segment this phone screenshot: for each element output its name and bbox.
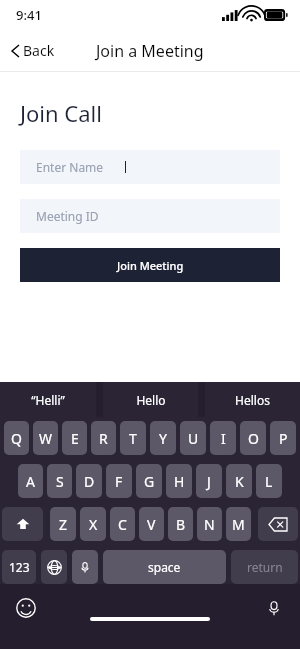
button[interactable]: K	[226, 464, 252, 498]
button[interactable]: Change keyboard	[41, 550, 67, 584]
staticText: J	[207, 472, 211, 491]
staticText: Join Meeting	[117, 258, 184, 273]
staticText: Back	[23, 41, 55, 60]
button[interactable]: Back	[0, 35, 65, 66]
staticText: R	[99, 429, 108, 448]
button[interactable]: Enter Name	[20, 150, 280, 184]
staticText: Join a Meeting	[96, 40, 204, 62]
button[interactable]: V	[139, 507, 164, 541]
button[interactable]: Meeting ID	[20, 199, 280, 233]
staticText: P	[279, 429, 288, 448]
button[interactable]: Emoji	[14, 596, 38, 620]
button[interactable]: A	[18, 464, 43, 498]
button[interactable]: Y	[150, 421, 176, 455]
button[interactable]: C	[110, 507, 135, 541]
staticText: B	[176, 515, 186, 534]
staticText: Y	[159, 429, 167, 448]
staticText: E	[71, 429, 79, 448]
button[interactable]: U	[180, 421, 206, 455]
staticText: O	[248, 429, 259, 448]
staticText: L	[265, 472, 273, 491]
button[interactable]: Join Meeting	[20, 248, 280, 282]
button[interactable]: Shift	[2, 507, 43, 541]
button[interactable]: Backspace	[258, 507, 298, 541]
button[interactable]: D	[76, 464, 102, 498]
button[interactable]: I	[210, 421, 236, 455]
staticText: H	[174, 472, 185, 491]
staticText: A	[26, 472, 35, 491]
button[interactable]: Z	[50, 507, 76, 541]
staticText: K	[235, 472, 244, 491]
button[interactable]: T	[120, 421, 146, 455]
staticText: “Helli”	[31, 392, 65, 408]
button[interactable]: S	[47, 464, 72, 498]
button[interactable]: G	[136, 464, 162, 498]
staticText: Hello	[136, 392, 166, 408]
staticText: 9:41	[16, 6, 42, 24]
staticText: U	[188, 429, 199, 448]
button[interactable]: Dictate	[72, 550, 98, 584]
staticText: F	[115, 472, 123, 491]
button[interactable]: Hello	[103, 382, 198, 417]
button[interactable]: return	[231, 550, 298, 584]
button[interactable]: J	[196, 464, 222, 498]
staticText: X	[89, 515, 98, 534]
staticText: D	[84, 472, 95, 491]
button[interactable]: F	[106, 464, 132, 498]
staticText: Meeting ID	[36, 208, 99, 224]
staticText: N	[204, 515, 215, 534]
staticText: G	[144, 472, 155, 491]
button[interactable]: 123	[2, 550, 36, 584]
staticText: C	[118, 515, 127, 534]
button[interactable]: O	[240, 421, 266, 455]
button[interactable]: Q	[4, 421, 29, 455]
staticText: Join Call	[20, 98, 102, 128]
staticText: 123	[9, 559, 30, 575]
button[interactable]: P	[270, 421, 296, 455]
staticText: M	[232, 515, 245, 534]
staticText: return	[247, 559, 283, 575]
staticText: V	[147, 515, 156, 534]
button[interactable]: X	[80, 507, 106, 541]
button[interactable]: R	[91, 421, 116, 455]
button[interactable]: space	[103, 550, 226, 584]
staticText: Z	[59, 515, 68, 534]
button[interactable]: N	[197, 507, 222, 541]
staticText: W	[39, 429, 53, 448]
staticText: space	[148, 559, 181, 575]
button[interactable]: B	[168, 507, 193, 541]
staticText: T	[129, 429, 137, 448]
button[interactable]: Dictate	[262, 596, 286, 620]
button[interactable]: W	[33, 421, 58, 455]
staticText: Hellos	[235, 392, 270, 408]
button[interactable]: L	[256, 464, 282, 498]
button[interactable]: E	[62, 421, 87, 455]
button[interactable]: Hellos	[205, 382, 300, 417]
button[interactable]: M	[226, 507, 251, 541]
button[interactable]: “Helli”	[0, 382, 96, 417]
staticText: S	[56, 472, 64, 491]
staticText: Enter Name	[36, 159, 104, 175]
button[interactable]: H	[166, 464, 192, 498]
staticText: Q	[11, 429, 22, 448]
staticText: I	[221, 429, 226, 448]
